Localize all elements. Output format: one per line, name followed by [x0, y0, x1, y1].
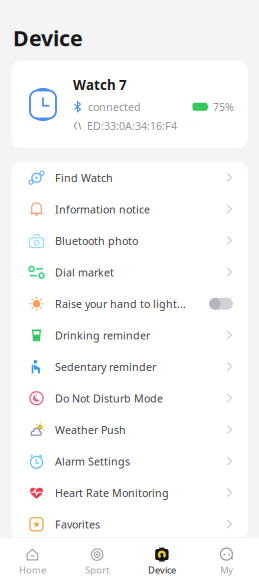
- staticText: Bluetooth photo: [55, 234, 138, 248]
- button[interactable]: Information notice: [11, 193, 248, 225]
- staticText: Sedentary reminder: [55, 360, 156, 374]
- button[interactable]: Sport: [65, 538, 130, 576]
- button[interactable]: Heart Rate Monitoring: [11, 477, 248, 508]
- button[interactable]: Home: [0, 538, 65, 576]
- staticText: Device: [13, 24, 83, 52]
- button[interactable]: Bluetooth photo: [11, 225, 248, 256]
- button[interactable]: Drinking reminder: [11, 319, 248, 351]
- button[interactable]: Raise your hand to light...: [11, 288, 248, 319]
- staticText: 75%: [213, 100, 234, 114]
- staticText: My: [220, 564, 233, 576]
- staticText: Drinking reminder: [55, 328, 150, 342]
- staticText: Alarm Settings: [55, 454, 130, 468]
- staticText: Sport: [85, 564, 109, 576]
- staticText: Weather Push: [55, 423, 126, 437]
- button[interactable]: Alarm Settings: [11, 445, 248, 477]
- staticText: Favorites: [55, 517, 100, 531]
- staticText: connected: [88, 100, 141, 114]
- button[interactable]: Weather Push: [11, 414, 248, 445]
- staticText: Information notice: [55, 202, 150, 216]
- staticText: Dial market: [55, 265, 114, 279]
- button[interactable]: Do Not Disturb Mode: [11, 382, 248, 414]
- staticText: Watch 7: [73, 76, 127, 94]
- staticText: Do Not Disturb Mode: [55, 391, 163, 405]
- staticText: ED:33:0A:34:16:F4: [87, 119, 177, 133]
- staticText: Raise your hand to light...: [55, 297, 186, 311]
- button[interactable]: Dial market: [11, 256, 248, 288]
- button[interactable]: Find Watch: [11, 162, 248, 193]
- button[interactable]: Device: [129, 538, 194, 576]
- staticText: Find Watch: [55, 171, 113, 185]
- staticText: Device: [148, 564, 176, 576]
- staticText: Heart Rate Monitoring: [55, 486, 169, 500]
- button[interactable]: My: [194, 538, 259, 576]
- staticText: Home: [19, 564, 46, 576]
- button[interactable]: Favorites: [11, 508, 248, 540]
- button[interactable]: Sedentary reminder: [11, 351, 248, 382]
